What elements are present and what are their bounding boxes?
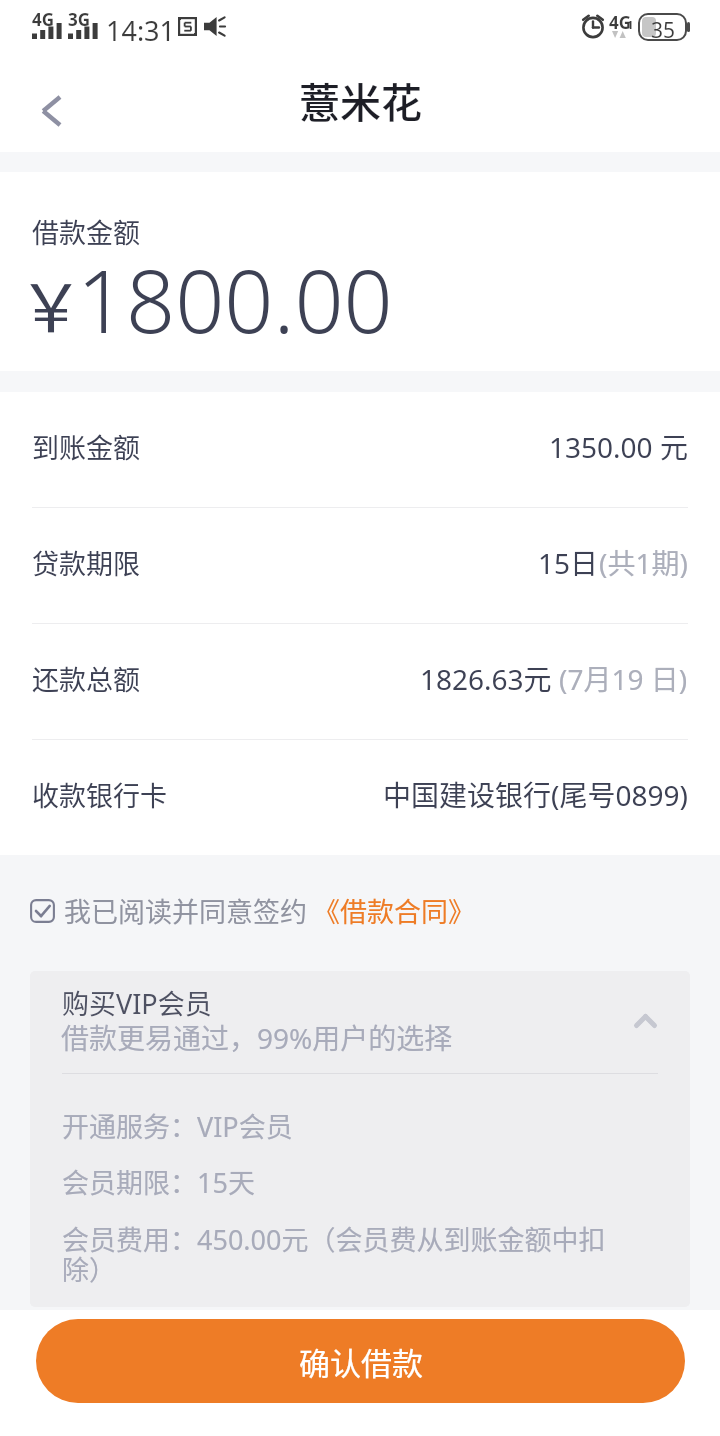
staticText: 购买VIP会员 xyxy=(62,983,212,1022)
staticText: 确认借款 xyxy=(299,1339,423,1384)
staticText: 4G xyxy=(609,11,632,34)
staticText: 4G xyxy=(32,8,55,31)
staticText: 会员费用：450.00元（会员费从到账金额中扣除） xyxy=(62,1219,615,1288)
staticText: 我已阅读并同意签约 《借款合同》 xyxy=(64,891,476,930)
staticText: 薏米花 xyxy=(299,70,422,129)
staticText: 中国建设银行(尾号0899) xyxy=(383,774,688,815)
button[interactable]: 我已阅读并同意签约 《借款合同》 xyxy=(30,891,476,930)
button[interactable]: Back xyxy=(0,61,100,152)
staticText: 14:31 xyxy=(106,12,176,49)
staticText: 1826.63元 xyxy=(420,658,559,699)
staticText: 1350.00 元 xyxy=(549,426,688,467)
staticText: 到账金额 xyxy=(32,427,140,466)
staticText: 3G xyxy=(68,8,91,31)
staticText: 会员期限：15天 xyxy=(62,1162,255,1201)
staticText: 借款金额 xyxy=(32,212,140,251)
staticText: 收款银行卡 xyxy=(32,775,167,814)
staticText: (7月19 日) xyxy=(559,658,688,699)
staticText: ￥ xyxy=(18,255,84,351)
staticText: 贷款期限 xyxy=(32,543,140,582)
button[interactable]: 确认借款 xyxy=(36,1319,685,1403)
staticText: 开通服务：VIP会员 xyxy=(62,1106,293,1145)
button[interactable]: Collapse xyxy=(605,971,685,1071)
staticText: 借款更易通过，99%用户的选择 xyxy=(61,1017,453,1058)
staticText: 还款总额 xyxy=(32,659,140,698)
staticText: 15日 xyxy=(538,542,599,583)
staticText: 35 xyxy=(651,16,676,45)
staticText: (共1期) xyxy=(599,542,688,583)
staticText: 1 xyxy=(627,17,634,32)
staticText: 1800.00 xyxy=(77,241,393,358)
button[interactable]: 购买VIP会员 xyxy=(30,971,690,1071)
